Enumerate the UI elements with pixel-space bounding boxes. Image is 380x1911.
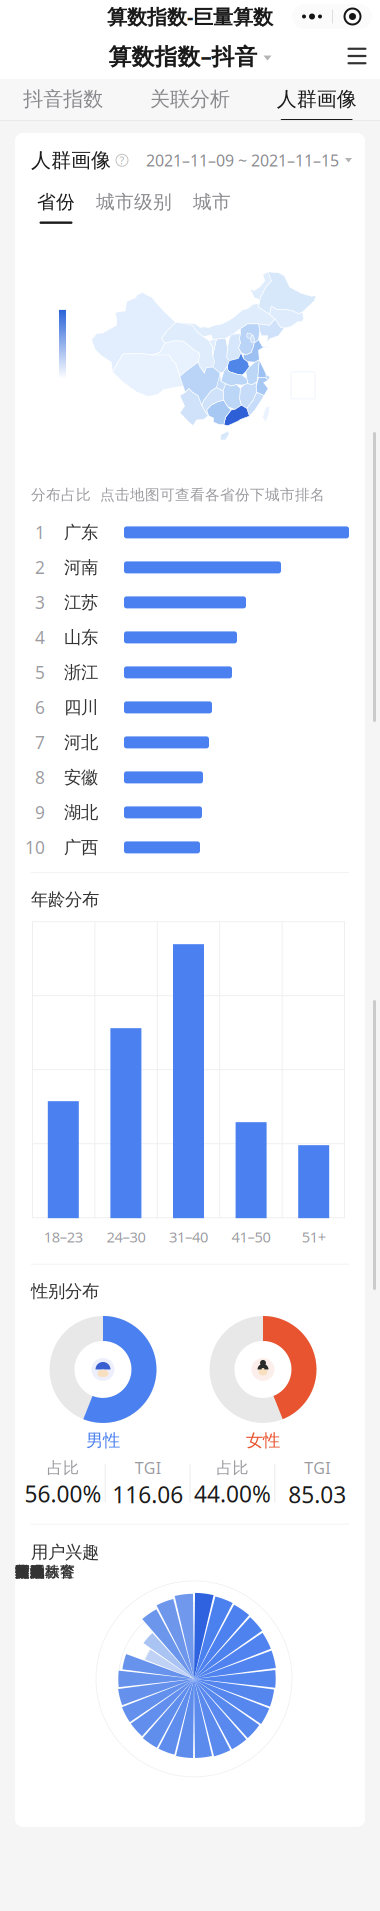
- button[interactable]: More options: [292, 4, 380, 29]
- staticText: 浙江: [64, 662, 98, 683]
- staticText: 医疗: [15, 1563, 45, 1581]
- staticText: 男性: [86, 1430, 120, 1451]
- staticText: 安徽: [64, 767, 98, 788]
- staticText: ?: [119, 153, 124, 167]
- staticText: 点击地图可查看各省份下城市排名: [100, 486, 325, 504]
- staticText: 9: [35, 801, 45, 824]
- staticText: 56.00%: [24, 1479, 101, 1509]
- staticText: 金融: [15, 1563, 45, 1581]
- button[interactable]: 7: [15, 725, 365, 760]
- staticText: 四川: [64, 697, 98, 718]
- staticText: 1: [35, 521, 45, 544]
- staticText: 算数指数-巨量算数: [107, 3, 273, 30]
- staticText: 2021–11–09 ~ 2021–11–15: [146, 150, 339, 171]
- staticText: 算数指数–抖音: [108, 41, 257, 71]
- staticText: 18–23: [44, 1227, 83, 1247]
- staticText: 44.00%: [194, 1479, 271, 1509]
- staticText: 江苏: [64, 592, 98, 613]
- staticText: 山东: [64, 627, 98, 648]
- staticText: 性别分布: [31, 1281, 99, 1302]
- staticText: 5: [35, 661, 45, 684]
- staticText: 8: [35, 766, 45, 789]
- button[interactable]: 6: [15, 690, 365, 725]
- staticText: TGI: [135, 1457, 161, 1478]
- staticText: 51+: [302, 1227, 326, 1247]
- staticText: 2: [35, 556, 45, 579]
- staticText: 3: [35, 591, 45, 614]
- button[interactable]: 城市级别: [94, 191, 174, 224]
- staticText: 占比: [216, 1458, 248, 1478]
- button[interactable]: 抖音指数: [0, 79, 127, 121]
- staticText: 河南: [64, 557, 98, 578]
- staticText: 41–50: [232, 1227, 271, 1247]
- staticText: TGI: [304, 1457, 330, 1478]
- staticText: 生活: [15, 1563, 45, 1581]
- staticText: 116.06: [112, 1479, 183, 1510]
- staticText: 女性: [246, 1430, 280, 1451]
- staticText: 文化教育: [15, 1563, 75, 1581]
- staticText: 关联分析: [150, 87, 230, 111]
- staticText: 演绎: [15, 1563, 45, 1581]
- staticText: 85.03: [288, 1479, 346, 1510]
- button[interactable]: 人群画像: [253, 79, 380, 121]
- button[interactable]: 3: [15, 585, 365, 620]
- staticText: 拍摄: [15, 1563, 45, 1581]
- staticText: 舞蹈: [15, 1563, 45, 1581]
- staticText: 运动: [15, 1563, 45, 1581]
- staticText: 美食: [15, 1563, 45, 1581]
- button[interactable]: 省份: [35, 191, 77, 224]
- staticText: 河北: [64, 732, 98, 753]
- button[interactable]: 2: [15, 550, 365, 585]
- staticText: 6: [35, 696, 45, 719]
- button[interactable]: 2021–11–09 ~ 2021–11–15: [146, 150, 352, 171]
- staticText: 10: [25, 836, 45, 859]
- staticText: 24–30: [106, 1227, 145, 1247]
- staticText: 用户兴趣: [31, 1542, 99, 1563]
- staticText: 省份: [37, 191, 75, 213]
- staticText: 分布占比: [31, 486, 91, 504]
- staticText: 抖音指数: [23, 87, 103, 111]
- staticText: 游戏: [15, 1563, 45, 1581]
- button[interactable]: 5: [15, 655, 365, 690]
- button[interactable]: Menu: [334, 33, 380, 79]
- staticText: 时尚: [15, 1563, 45, 1581]
- staticText: 城市: [193, 191, 231, 213]
- staticText: 城市级别: [96, 191, 172, 213]
- staticText: 4: [35, 626, 45, 649]
- staticText: 广西: [64, 837, 98, 858]
- staticText: 年龄分布: [31, 889, 99, 910]
- staticText: 军政法警: [15, 1563, 75, 1581]
- button[interactable]: 10: [15, 830, 365, 865]
- staticText: 广东: [64, 522, 98, 543]
- staticText: 辅助标签: [15, 1563, 75, 1581]
- button[interactable]: 城市: [191, 191, 233, 224]
- staticText: 31–40: [169, 1227, 208, 1247]
- button[interactable]: 8: [15, 760, 365, 795]
- button[interactable]: 4: [15, 620, 365, 655]
- staticText: 占比: [47, 1458, 79, 1478]
- staticText: 7: [35, 731, 45, 754]
- button[interactable]: 1: [15, 515, 365, 550]
- staticText: 人群画像: [277, 87, 357, 111]
- staticText: 湖北: [64, 802, 98, 823]
- button[interactable]: 9: [15, 795, 365, 830]
- button[interactable]: 关联分析: [127, 79, 253, 121]
- staticText: 人群画像: [31, 148, 111, 173]
